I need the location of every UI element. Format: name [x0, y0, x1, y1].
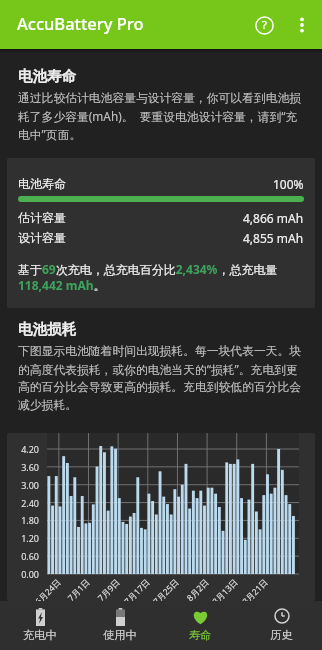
staticText: 2.40 — [9, 497, 39, 509]
button[interactable]: Help — [240, 1, 288, 49]
staticText: 1.80 — [9, 514, 39, 526]
staticText: 0.60 — [9, 550, 39, 562]
staticText: 基于69次充电，总充电百分比2,434%，总充电量118,442 mAh。 — [18, 261, 304, 293]
staticText: 4.20 — [9, 443, 39, 455]
staticText: 3.00 — [9, 479, 39, 491]
staticText: 4,855 mAh — [243, 230, 304, 246]
staticText: 电池寿命 — [18, 67, 76, 85]
staticText: 8月13日 — [199, 576, 240, 601]
staticText: 6月24日 — [22, 576, 63, 601]
staticText: 7月9日 — [81, 576, 122, 601]
staticText: 7月1日 — [51, 576, 92, 601]
button[interactable]: 寿命 — [160, 601, 241, 650]
staticText: 7月25日 — [140, 576, 181, 601]
staticText: 0.00 — [9, 568, 39, 580]
staticText: AccuBattery Pro — [17, 12, 144, 34]
button[interactable]: 使用中 — [80, 601, 160, 650]
staticText: 8月2日 — [170, 576, 211, 601]
button[interactable]: 历史 — [241, 601, 322, 650]
staticText: 使用中 — [103, 628, 137, 642]
staticText: 7月17日 — [111, 576, 152, 601]
staticText: 历史 — [270, 628, 293, 642]
staticText: 下图显示电池随着时间出现损耗。每一块代表一天。块的高度代表损耗，或你的电池当天的… — [18, 344, 308, 413]
staticText: 设计容量 — [18, 230, 66, 245]
button[interactable]: More options — [280, 3, 322, 47]
staticText: 估计容量 — [18, 210, 66, 225]
staticText: 3.60 — [9, 461, 39, 473]
staticText: 电池损耗 — [18, 320, 76, 338]
staticText: 通过比较估计电池容量与设计容量，你可以看到电池损耗了多少容量(mAh)。 要重设… — [18, 91, 308, 142]
button[interactable]: 充电中 — [0, 601, 80, 650]
staticText: 4,866 mAh — [243, 210, 304, 226]
staticText: 电池寿命 — [18, 176, 66, 191]
staticText: 1.20 — [9, 532, 39, 544]
staticText: ? — [262, 17, 267, 33]
staticText: 100% — [273, 176, 304, 192]
staticText: 8月21日 — [229, 576, 270, 601]
staticText: 寿命 — [189, 628, 212, 642]
staticText: 充电中 — [23, 628, 57, 642]
